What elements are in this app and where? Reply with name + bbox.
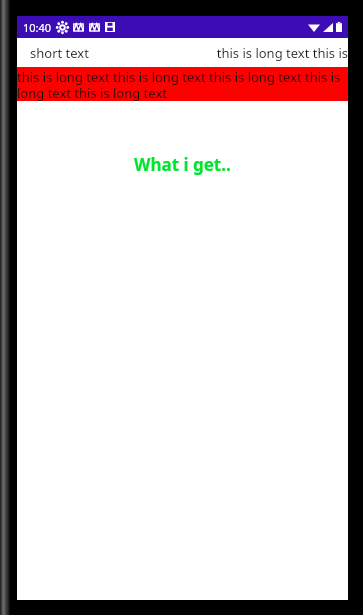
button[interactable]: this is long text this is long text this…: [17, 67, 348, 101]
other: Saved: [105, 22, 115, 32]
staticText: short text: [30, 44, 89, 62]
staticText: this is long text this is long text this…: [17, 68, 348, 101]
other: Gmail: [89, 22, 100, 33]
button[interactable]: short text: [17, 38, 348, 67]
staticText: 10:40: [23, 20, 52, 35]
other: Gmail: [73, 22, 84, 33]
staticText: What i get..: [134, 153, 231, 176]
staticText: this is long text this is: [216, 44, 348, 62]
other: Settings: [57, 22, 68, 33]
